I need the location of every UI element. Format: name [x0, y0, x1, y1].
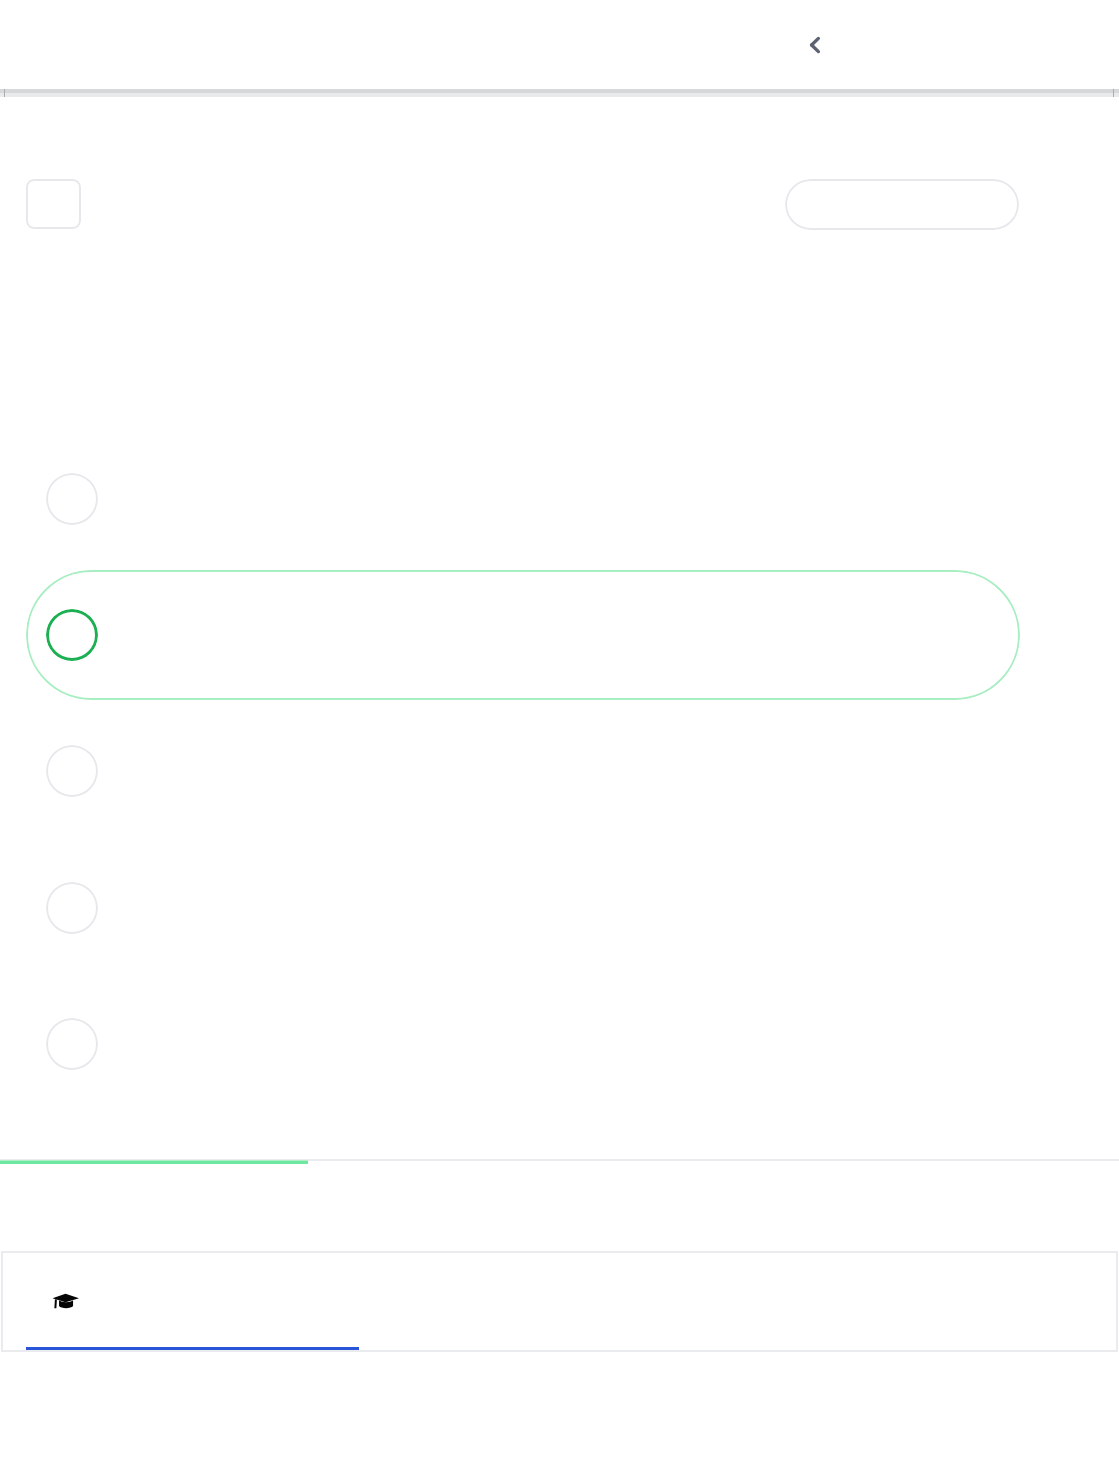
button[interactable]: Bookmark: [26, 179, 81, 229]
button[interactable]: Answer option 2: [26, 570, 1020, 700]
button[interactable]: Back: [790, 20, 840, 70]
button[interactable]: Hint: [785, 179, 1019, 230]
button[interactable]: Learn tab: [26, 1253, 359, 1350]
